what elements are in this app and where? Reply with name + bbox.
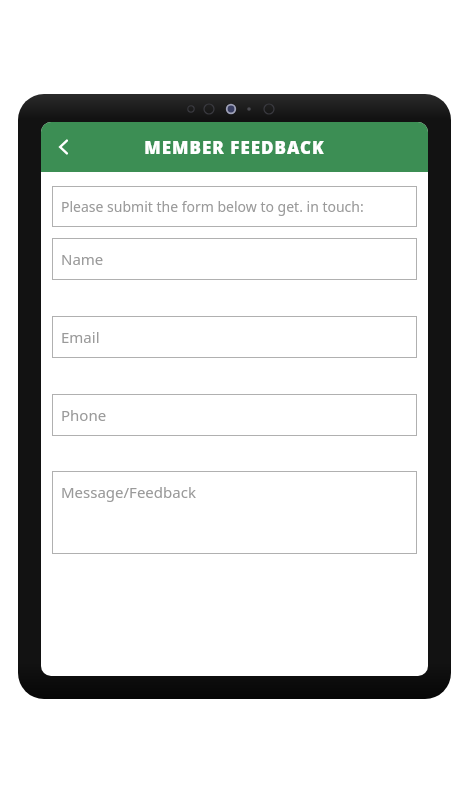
button[interactable]: Please submit the form below to get. in … bbox=[52, 186, 417, 227]
button[interactable]: Message/Feedback bbox=[52, 471, 417, 554]
staticText: MEMBER FEEDBACK bbox=[144, 136, 325, 159]
button[interactable]: Email bbox=[52, 316, 417, 358]
button[interactable]: Back bbox=[41, 124, 87, 170]
staticText: Phone bbox=[61, 405, 107, 425]
staticText: Email bbox=[61, 327, 100, 347]
staticText: Please submit the form below to get. in … bbox=[61, 197, 364, 216]
button[interactable]: Phone bbox=[52, 394, 417, 436]
staticText: Message/Feedback bbox=[61, 482, 196, 502]
button[interactable]: Name bbox=[52, 238, 417, 280]
staticText: Name bbox=[61, 249, 104, 269]
